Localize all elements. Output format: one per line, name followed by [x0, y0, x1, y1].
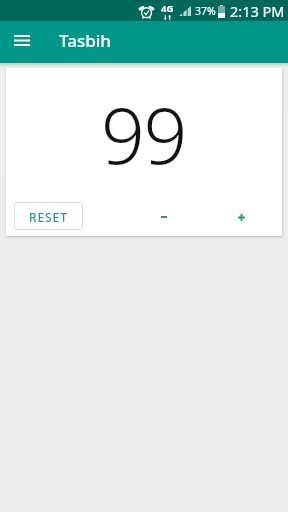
- staticText: 4G: [161, 2, 174, 15]
- button[interactable]: RESET: [14, 202, 83, 230]
- staticText: RESET: [29, 209, 68, 225]
- button[interactable]: Decrease: [142, 195, 186, 236]
- button[interactable]: Increase: [219, 195, 263, 236]
- button[interactable]: Open navigation drawer: [10, 28, 34, 52]
- staticText: 2:13 PM: [230, 1, 285, 21]
- staticText: 37%: [195, 4, 216, 18]
- staticText: 99: [101, 82, 186, 187]
- staticText: Tasbih: [59, 29, 111, 52]
